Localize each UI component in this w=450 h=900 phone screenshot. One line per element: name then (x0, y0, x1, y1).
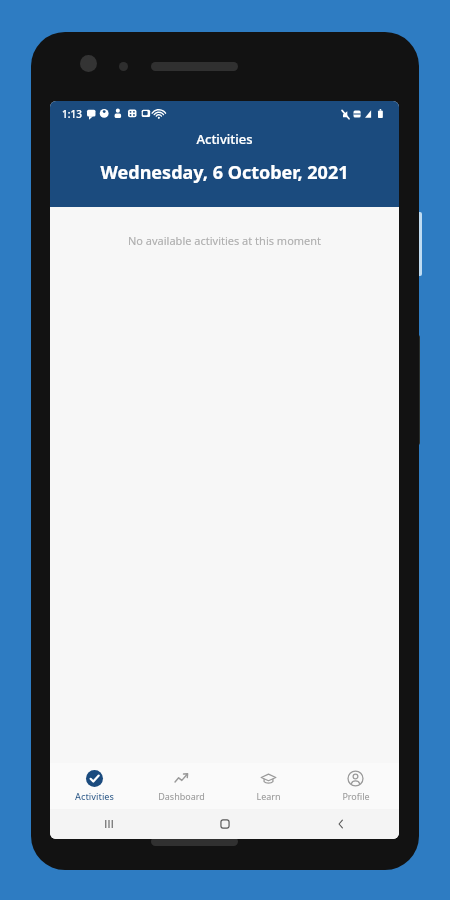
staticText: 1:13 (62, 107, 82, 121)
staticText: Dashboard (158, 790, 205, 802)
button[interactable]: Dashboard (138, 763, 225, 809)
staticText: Activities (75, 790, 114, 802)
button[interactable]: Learn (225, 763, 312, 809)
staticText: Wednesday, 6 October, 2021 (50, 160, 399, 185)
button[interactable]: Activities (50, 763, 138, 809)
button[interactable]: Recent apps (50, 809, 167, 839)
staticText: Learn (256, 790, 281, 802)
button[interactable]: Profile (312, 763, 399, 809)
staticText: No available activities at this moment (50, 233, 399, 248)
staticText: Activities (50, 130, 399, 148)
button[interactable]: Home (167, 809, 283, 839)
staticText: Profile (342, 790, 370, 802)
button[interactable]: Back (283, 809, 399, 839)
